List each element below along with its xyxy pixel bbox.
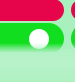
button[interactable]: Next crimson item	[71, 0, 75, 21]
button[interactable]: Next green item	[71, 23, 75, 54]
button[interactable]: Green item	[0, 23, 64, 54]
button[interactable]: Crimson item	[0, 0, 64, 21]
